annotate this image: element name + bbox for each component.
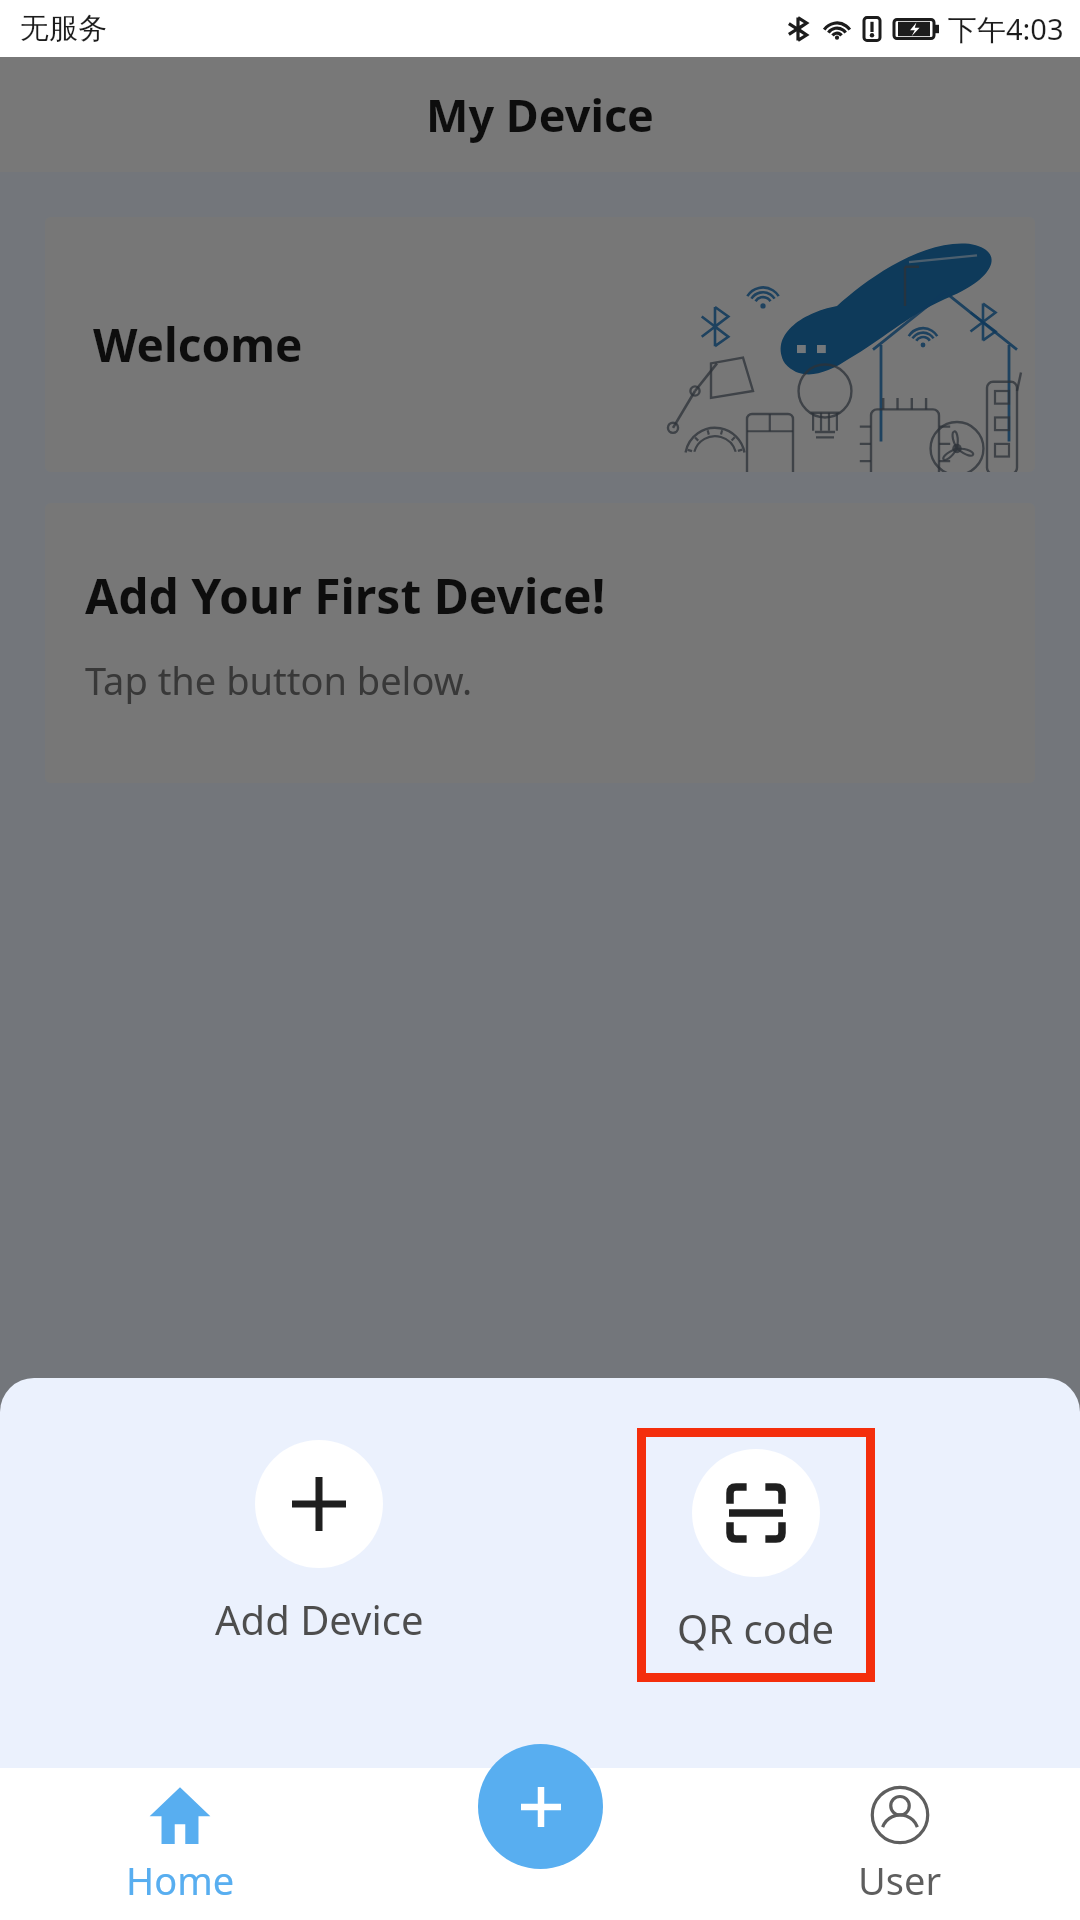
staticText: Welcome — [93, 313, 303, 376]
button[interactable]: Welcome — [45, 217, 1035, 472]
staticText: QR code — [677, 1601, 835, 1655]
staticText: My Device — [426, 84, 654, 145]
button[interactable]: Add Your First Device! — [45, 503, 1035, 783]
button[interactable]: User — [720, 1768, 1080, 1920]
staticText: 下午4:03 — [948, 9, 1064, 49]
staticText: Home — [126, 1854, 235, 1906]
button[interactable]: Add Device — [205, 1428, 433, 1672]
button[interactable]: Home — [0, 1768, 360, 1920]
button[interactable]: Add — [478, 1744, 603, 1869]
other: Add Device — [288, 1473, 350, 1535]
other: QR code scanner — [725, 1482, 787, 1544]
staticText: Add Device — [215, 1592, 424, 1646]
staticText: User — [858, 1854, 942, 1906]
staticText: Tap the button below. — [85, 654, 473, 706]
button[interactable]: QR code scanner — [646, 1437, 866, 1673]
staticText: 无服务 — [20, 10, 107, 47]
staticText: Add Your First Device! — [85, 563, 606, 628]
